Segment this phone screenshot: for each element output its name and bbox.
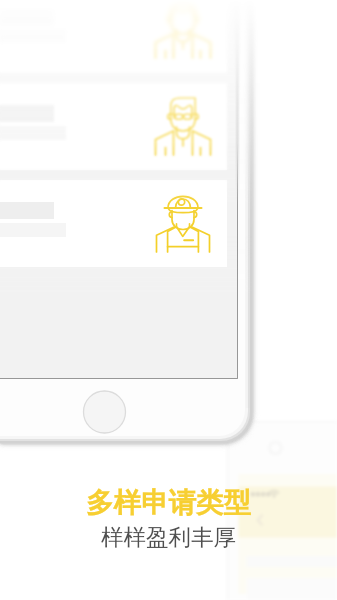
button[interactable]: 样样盈利丰厚 <box>101 523 236 551</box>
button[interactable]: 多样申请类型 <box>86 486 251 521</box>
